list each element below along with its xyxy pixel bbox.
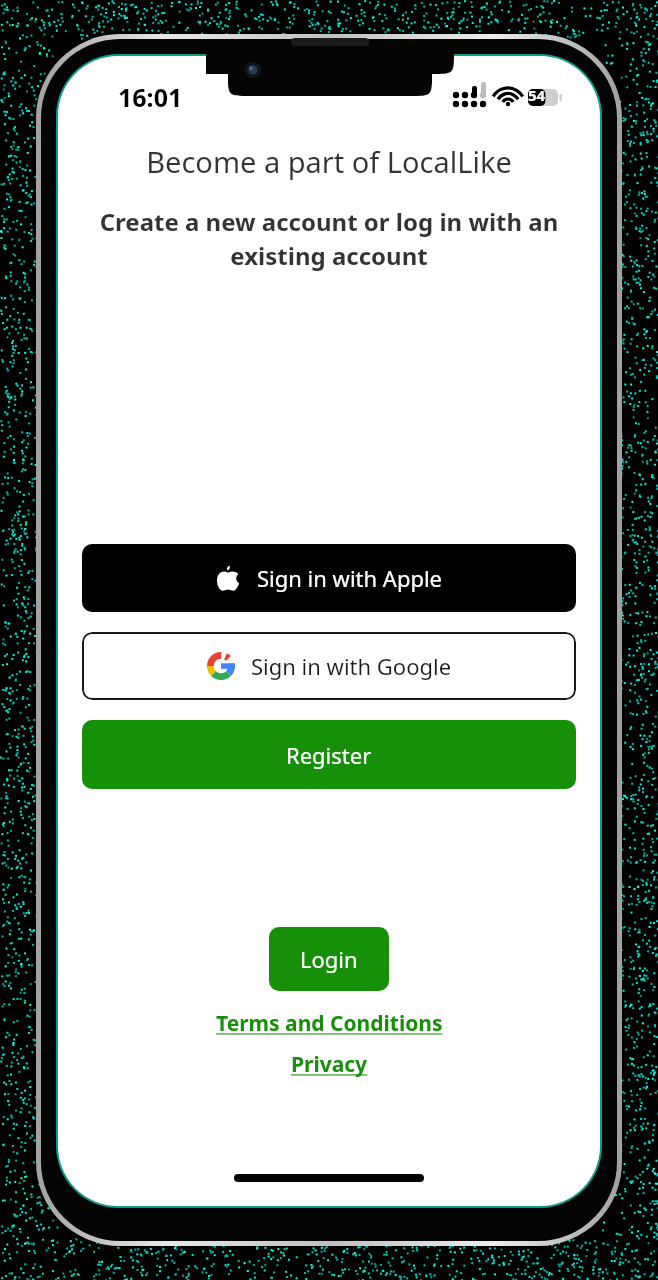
staticText: Sign in with Google <box>251 651 452 681</box>
button[interactable]: Sign in with Apple <box>82 544 576 612</box>
staticText: Register <box>286 740 372 770</box>
staticText: Login <box>300 944 358 974</box>
staticText: Become a part of LocalLike <box>146 142 512 181</box>
button[interactable]: Terms and Conditions <box>216 1009 443 1038</box>
staticText: Sign in with Apple <box>257 563 443 593</box>
staticText: 16:01 <box>118 80 183 114</box>
button[interactable]: Sign in with Google <box>82 632 576 700</box>
staticText: Create a new account or log in with an e… <box>64 205 594 273</box>
staticText: 54 <box>528 85 546 105</box>
button[interactable]: Privacy <box>291 1050 368 1079</box>
button[interactable]: Login <box>269 927 389 991</box>
staticText: Privacy <box>291 1050 368 1079</box>
other: Home indicator <box>234 1174 424 1182</box>
button[interactable]: Register <box>82 720 576 789</box>
staticText: Terms and Conditions <box>216 1009 443 1038</box>
